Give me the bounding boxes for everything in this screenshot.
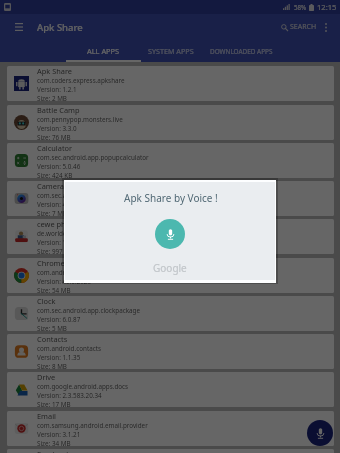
staticText: 12:15 (317, 2, 337, 12)
button[interactable]: Apk Share (7, 66, 334, 101)
staticText: de.worldofapps.cewe (37, 229, 100, 238)
staticText: 58% (294, 3, 307, 11)
staticText: Version: 1.2.1 (37, 85, 77, 94)
staticText: com.sec.android.app.camera (37, 191, 123, 200)
staticText: com.android.chrome (37, 268, 99, 277)
staticText: Version: 49.0.2623 (37, 277, 92, 286)
staticText: Version: 1.0.1 (37, 238, 77, 247)
staticText: Version: 3.1.21 (37, 430, 81, 439)
button[interactable]: cewe photoworld (7, 219, 334, 254)
button[interactable]: ALL APPS (66, 40, 141, 62)
staticText: com.pennypop.monsters.live (37, 115, 123, 124)
button[interactable]: Clock (7, 296, 334, 331)
staticText: Size: 17 MB (37, 400, 71, 407)
staticText: com.coders.express.apkshare (37, 76, 125, 85)
staticText: Google (153, 261, 187, 275)
staticText: Chrome (37, 258, 65, 268)
button[interactable]: More options (319, 17, 332, 37)
staticText: cewe photoworld (37, 219, 97, 229)
staticText: Version: 4.0.02 (37, 200, 81, 209)
staticText: Facebook (37, 449, 71, 453)
staticText: com.google.android.apps.docs (37, 382, 129, 391)
staticText: DOWNLOADED APPS (210, 47, 273, 56)
staticText: Size: 76 MB (37, 133, 71, 140)
staticText: Contacts (37, 334, 68, 344)
staticText: Size: 7 MB (37, 209, 67, 216)
staticText: Size: 997 KB (37, 247, 73, 254)
staticText: Apk Share by Voice ! (124, 191, 218, 205)
button[interactable]: Email (7, 411, 334, 446)
staticText: Version: 5.0.46 (37, 162, 81, 171)
button[interactable]: Contacts (7, 334, 334, 369)
button[interactable]: Camera (7, 181, 334, 216)
button[interactable]: SYSTEM APPS (141, 40, 201, 62)
staticText: Version: 2.3.583.20.34 (37, 391, 102, 400)
button[interactable]: Start voice input (155, 219, 185, 249)
button[interactable]: Open navigation menu (11, 19, 27, 35)
staticText: Version: 3.3.0 (37, 124, 77, 133)
staticText: Size: 34 MB (37, 439, 71, 446)
staticText: Version: 1.1.35 (37, 353, 81, 362)
button[interactable]: Chrome (7, 258, 334, 293)
staticText: Apk Share (37, 21, 83, 34)
button[interactable]: SEARCH (279, 18, 319, 36)
button[interactable]: Calculator (7, 143, 334, 178)
staticText: com.android.contacts (37, 344, 102, 353)
staticText: Battle Camp (37, 105, 80, 115)
staticText: Email (37, 411, 56, 421)
button[interactable]: Voice search (307, 420, 333, 446)
staticText: Size: 5 MB (37, 324, 67, 331)
staticText: Clock (37, 296, 56, 306)
staticText: com.sec.android.app.clockpackage (37, 306, 141, 315)
staticText: Apk Share (37, 66, 72, 76)
staticText: Calculator (37, 143, 73, 153)
staticText: Size: 8 MB (37, 362, 67, 369)
staticText: Version: 6.0.87 (37, 315, 81, 324)
button[interactable]: Battle Camp (7, 105, 334, 140)
staticText: Size: 54 MB (37, 286, 71, 293)
button[interactable]: Drive (7, 372, 334, 407)
staticText: SYSTEM APPS (148, 46, 194, 56)
staticText: Drive (37, 372, 56, 382)
staticText: com.sec.android.app.popupcalculator (37, 153, 149, 162)
button[interactable]: DOWNLOADED APPS (201, 40, 282, 62)
staticText: com.samsung.android.email.provider (37, 421, 148, 430)
staticText: SEARCH (290, 22, 317, 32)
staticText: Size: 2 MB (37, 94, 67, 101)
staticText: ALL APPS (87, 46, 120, 56)
staticText: Camera (37, 181, 64, 191)
staticText: Size: 424 KB (37, 171, 73, 178)
